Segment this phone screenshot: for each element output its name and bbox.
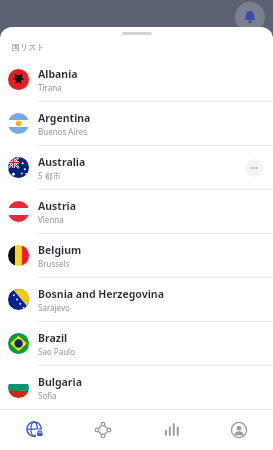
staticText: Vienna	[38, 214, 64, 225]
staticText: 5 都市	[38, 170, 61, 181]
staticText: Sofia	[38, 390, 57, 401]
button[interactable]: Network	[69, 410, 137, 450]
staticText: Belgium	[38, 243, 82, 257]
staticText: Buenos Aires	[38, 126, 88, 137]
staticText: Bulgaria	[38, 375, 82, 389]
button[interactable]: Statistics	[137, 410, 205, 450]
staticText: Bosnia and Herzegovina	[38, 287, 164, 301]
button[interactable]: Albania	[0, 58, 273, 102]
button[interactable]: Austria	[0, 190, 273, 234]
staticText: Albania	[38, 67, 78, 81]
button[interactable]: Belgium	[0, 234, 273, 278]
staticText: Brazil	[38, 331, 68, 345]
button[interactable]: Bosnia and Herzegovina	[0, 278, 273, 322]
staticText: Tirana	[38, 82, 62, 93]
staticText: Brussels	[38, 258, 70, 269]
staticText: 国リスト	[12, 42, 45, 52]
staticText: Sao Paulo	[38, 346, 75, 357]
button[interactable]: More options	[245, 159, 263, 177]
staticText: Sarajevo	[38, 302, 70, 313]
staticText: Australia	[38, 155, 86, 169]
button[interactable]: Brazil	[0, 322, 273, 366]
staticText: Argentina	[38, 111, 91, 125]
staticText: Austria	[38, 199, 77, 213]
button[interactable]: Australia	[0, 146, 273, 190]
button[interactable]: Bulgaria	[0, 366, 273, 409]
button[interactable]: Secure browsing	[0, 410, 69, 450]
button[interactable]: Argentina	[0, 102, 273, 146]
button[interactable]: Account	[205, 410, 273, 450]
button[interactable]: Notifications	[235, 2, 265, 32]
